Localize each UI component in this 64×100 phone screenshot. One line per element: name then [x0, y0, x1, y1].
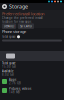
button[interactable]: Total space [0, 61, 64, 69]
staticText: SD CARD [20, 24, 32, 28]
staticText: Total space [2, 61, 16, 65]
staticText: Total space [2, 35, 16, 38]
button[interactable]: Pictures, videos [0, 86, 64, 95]
button[interactable]: Available [0, 69, 64, 77]
staticText: Phone storage [2, 29, 26, 34]
staticText: Pictures, videos [9, 87, 31, 90]
staticText: Storage [9, 3, 28, 10]
staticText: location for new apps [2, 20, 31, 23]
staticText: Available [2, 69, 14, 73]
button[interactable]: DEFAULT [2, 23, 16, 29]
staticText: Preferred install location [2, 11, 44, 16]
staticText: 2.76 GB [9, 81, 21, 85]
staticText: 8.04 GB [2, 73, 14, 76]
staticText: 15.00 GB [2, 65, 16, 68]
button[interactable]: Apps [0, 77, 64, 86]
staticText: Change the preferred install [2, 16, 43, 20]
staticText: DEFAULT [4, 24, 14, 28]
staticText: Apps [9, 78, 16, 81]
staticText: 148 MB [9, 90, 20, 94]
button[interactable]: SD CARD [18, 23, 34, 29]
